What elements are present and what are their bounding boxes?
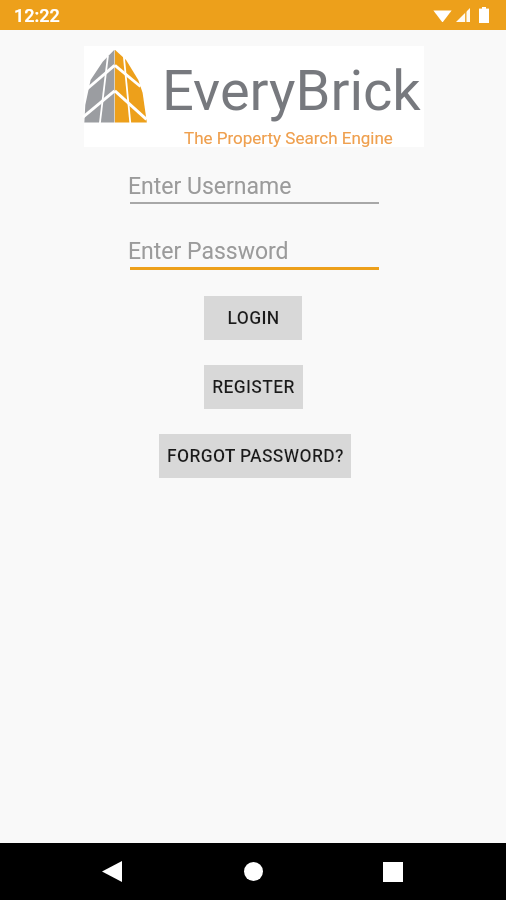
button[interactable]: Recent apps bbox=[358, 843, 428, 900]
staticText: LOGIN bbox=[227, 308, 280, 329]
staticText: FORGOT PASSWORD? bbox=[167, 446, 344, 467]
button[interactable]: Home bbox=[218, 843, 288, 900]
button[interactable]: LOGIN bbox=[204, 296, 302, 340]
staticText: Enter Password bbox=[128, 238, 289, 265]
staticText: REGISTER bbox=[212, 377, 295, 398]
staticText: Enter Username bbox=[128, 173, 292, 200]
button[interactable]: FORGOT PASSWORD? bbox=[159, 434, 351, 478]
staticText: EveryBrick bbox=[162, 58, 421, 124]
staticText: 12:22 bbox=[14, 5, 60, 26]
button[interactable]: REGISTER bbox=[204, 365, 303, 409]
staticText: The Property Search Engine bbox=[184, 128, 393, 148]
button[interactable]: Back bbox=[77, 843, 147, 900]
